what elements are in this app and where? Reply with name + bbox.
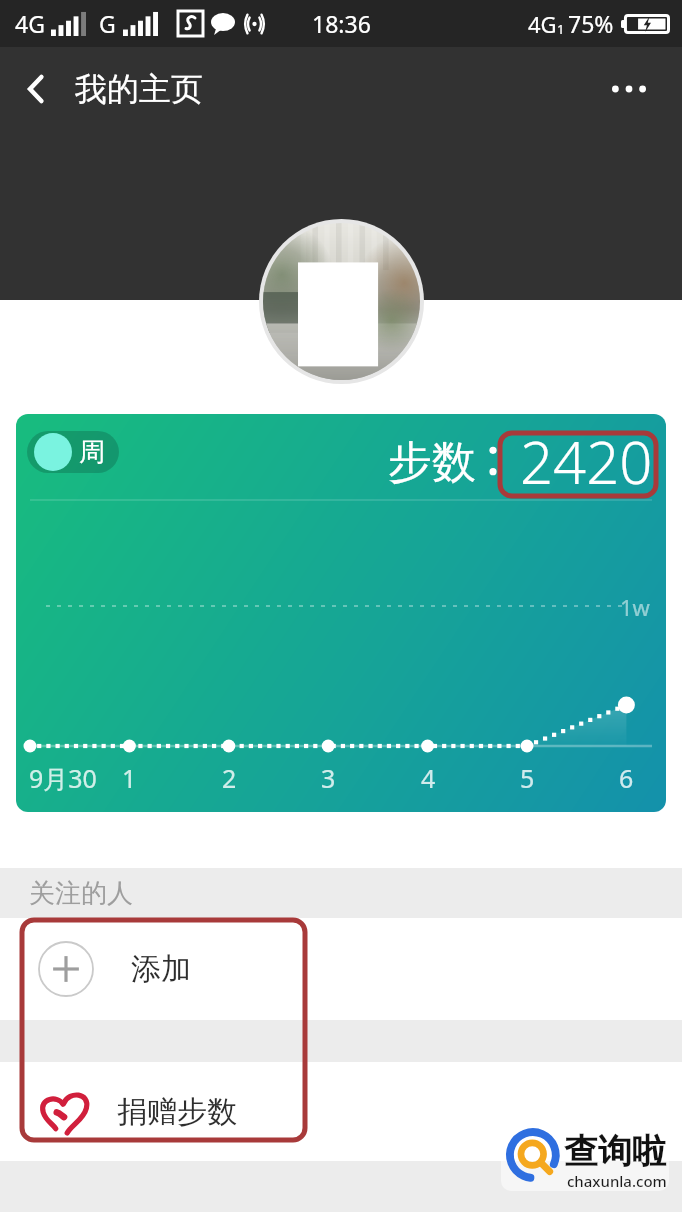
staticText: 1 [557,20,565,38]
staticText: G [99,8,116,39]
staticText: 1 [122,761,137,795]
staticText: 关注的人 [29,877,133,910]
staticText: 6 [619,761,634,795]
staticText: 9月30 [29,761,97,795]
button[interactable]: 添加 [0,918,682,1020]
staticText: 步数 [388,435,476,490]
staticText: 3 [321,761,336,795]
staticText: 2420 [520,422,653,501]
staticText: 周 [79,436,105,469]
button[interactable]: More options [598,47,682,131]
button[interactable]: Back [0,53,72,125]
staticText: 添加 [131,950,191,988]
staticText: 2 [222,761,237,795]
staticText: 捐赠步数 [117,1093,237,1131]
staticText: 5 [520,761,535,795]
button[interactable]: 捐赠步数 [0,1062,682,1161]
staticText: 18:36 [312,8,371,39]
staticText: 1w [620,592,650,622]
staticText: chaxunla.com [567,1171,667,1191]
staticText: 4G [528,9,557,39]
staticText: 4G [15,8,45,39]
button[interactable]: Profile photo [259,219,424,384]
staticText: 我的主页 [75,69,203,109]
button[interactable]: 周 [27,431,119,473]
staticText: 75% [568,8,614,39]
staticText: 查询啦 [564,1130,666,1173]
staticText: 4 [421,761,436,795]
